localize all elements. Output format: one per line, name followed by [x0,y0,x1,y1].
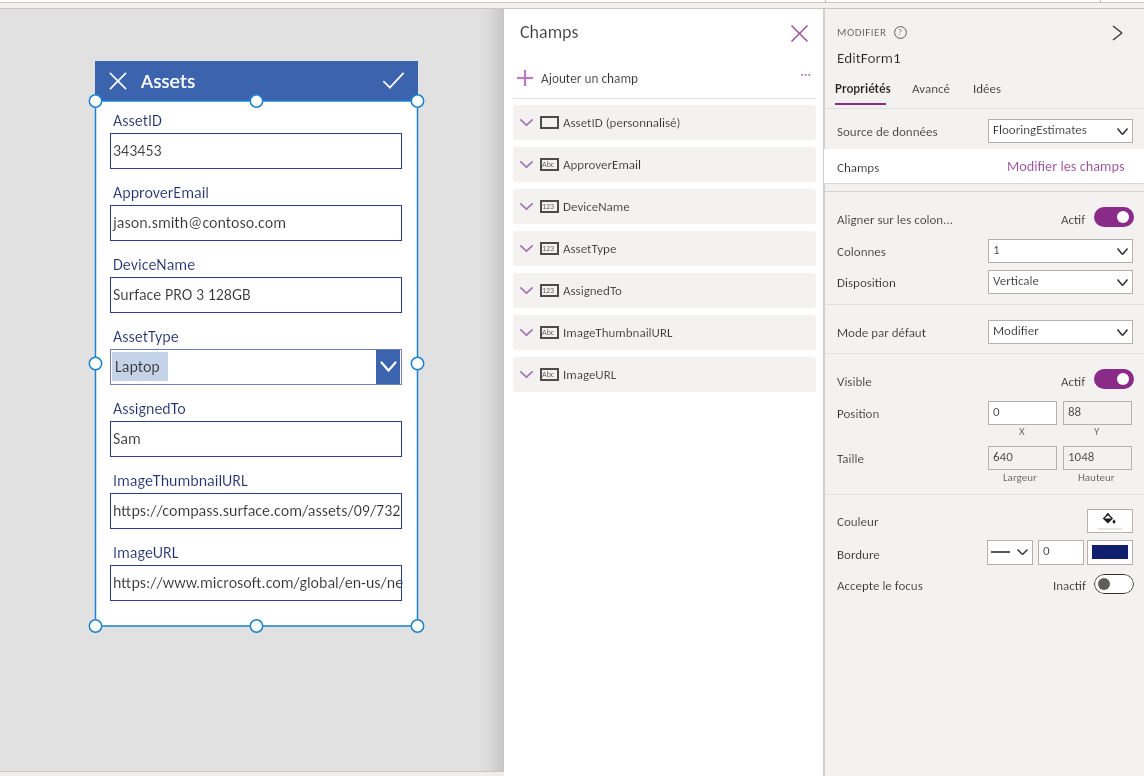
button[interactable]: Abc [513,357,816,392]
staticText: Actif [1061,374,1086,390]
staticText: ApproverEmail [563,157,641,173]
staticText: Modifier [993,323,1039,339]
button[interactable]: AssetID (personnalisé) [513,105,816,140]
staticText: https://www.microsoft.com/global/en-us/n… [113,573,404,593]
button[interactable]: 1048 [1063,446,1132,470]
staticText: Champs [520,21,579,43]
staticText: jason.smith@contoso.com [113,213,286,233]
button[interactable]: 123 [513,231,816,266]
button[interactable]: 123 [513,273,816,308]
staticText: Avancé [912,81,950,97]
staticText: FlooringEstimates [993,122,1087,138]
button[interactable]: Couleur de bordure [1087,540,1133,565]
staticText: AssignedTo [113,399,186,419]
button[interactable]: Laptop [110,349,402,385]
button[interactable]: Réduire [1112,25,1123,41]
staticText: 343453 [113,141,162,161]
staticText: Visible [837,374,872,390]
staticText: Champs [837,160,880,176]
button[interactable]: Modifier les champs [1007,157,1129,178]
staticText: AssetID (personnalisé) [563,115,681,131]
staticText: 123 [542,243,555,253]
staticText: DeviceName [113,255,196,275]
staticText: Actif [1061,212,1086,228]
staticText: Abc [542,369,555,379]
button[interactable]: Idées [973,81,1005,105]
staticText: ImageURL [113,543,179,563]
button[interactable]: Abc [513,315,816,350]
button[interactable]: Sam [110,421,402,457]
staticText: Colonnes [837,244,886,260]
staticText: Accepte le focus [837,578,923,594]
staticText: 123 [542,201,555,211]
button[interactable]: Actif [1094,369,1134,389]
button[interactable]: 640 [988,446,1057,470]
staticText: ImageThumbnailURL [563,325,673,341]
staticText: DeviceName [563,199,630,215]
button[interactable]: https://compass.surface.com/assets/09/73… [110,493,402,529]
staticText: Sam [113,429,141,449]
staticText: Source de données [837,124,938,140]
button[interactable]: Ajouter un champ [513,64,783,92]
button[interactable]: 1 [988,239,1133,263]
staticText: Couleur [837,514,879,530]
button[interactable]: jason.smith@contoso.com [110,205,402,241]
button[interactable]: 123 [513,189,816,224]
button[interactable]: Avancé [912,81,952,105]
staticText: MODIFIER [837,26,887,39]
staticText: Taille [837,451,864,467]
button[interactable]: FlooringEstimates [988,119,1133,143]
button[interactable]: Fermer le volet [791,25,808,42]
button[interactable]: Couleur de remplissage [1087,509,1133,533]
staticText: Abc [542,159,555,169]
staticText: Mode par défaut [837,325,927,341]
staticText: 0 [993,404,1000,420]
button[interactable]: 343453 [110,133,402,169]
staticText: Y [1094,425,1100,438]
button[interactable]: Fermer [110,73,126,89]
staticText: Surface PRO 3 128GB [113,285,251,305]
staticText: ? [898,27,902,37]
staticText: X [1019,425,1025,438]
staticText: https://compass.surface.com/assets/09/73… [113,501,401,521]
staticText: Laptop [115,357,160,377]
button[interactable]: Modifier [988,320,1133,344]
button[interactable]: Style de bordure [987,540,1033,565]
button[interactable]: Enregistrer [383,73,404,89]
staticText: ApproverEmail [113,183,209,203]
button[interactable]: Surface PRO 3 128GB [110,277,402,313]
staticText: Largeur [1003,471,1037,484]
staticText: Aligner sur les colon... [837,212,953,228]
staticText: 88 [1068,404,1082,420]
staticText: 123 [542,285,555,295]
button[interactable]: Fermer [95,61,418,101]
button[interactable]: https://www.microsoft.com/global/en-us/n… [110,565,402,601]
button[interactable]: 88 [1063,401,1132,425]
staticText: Abc [542,327,555,337]
button[interactable]: 0 [988,401,1057,425]
staticText: 640 [993,449,1013,465]
staticText: Position [837,406,880,422]
staticText: ImageThumbnailURL [113,471,248,491]
staticText: ImageURL [563,367,617,383]
button[interactable]: 0 [1038,540,1084,565]
staticText: Idées [973,81,1002,97]
staticText: AssetID [113,111,162,131]
button[interactable]: Plus d'options [794,63,818,87]
button[interactable]: Verticale [988,270,1133,294]
staticText: Inactif [1053,578,1087,594]
button[interactable]: Ouvrir la liste [376,350,400,384]
staticText: Verticale [993,273,1040,289]
staticText: EditForm1 [837,49,901,68]
button[interactable]: Abc [513,147,816,182]
staticText: AssetType [113,327,179,347]
button[interactable]: Actif [1094,207,1134,227]
button[interactable]: Inactif [1094,574,1134,594]
button[interactable]: Propriétés [835,81,893,105]
staticText: Bordure [837,547,880,563]
staticText: AssetType [563,241,617,257]
staticText: Propriétés [835,81,891,97]
staticText: 1 [993,242,1000,258]
staticText: Hauteur [1078,471,1115,484]
staticText: AssignedTo [563,283,622,299]
